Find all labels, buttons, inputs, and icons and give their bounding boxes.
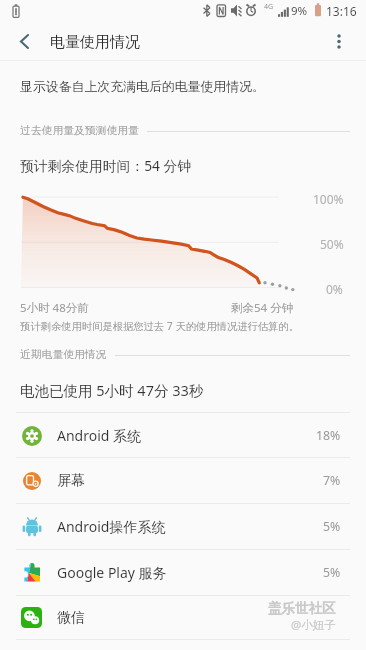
- button[interactable]: Google Play 服务: [0, 550, 366, 595]
- button[interactable]: Android操作系统: [0, 504, 366, 549]
- button[interactable]: Back: [4, 22, 44, 61]
- staticText: 预计剩余使用时间是根据您过去 7 天的使用情况进行估算的。: [20, 319, 299, 333]
- staticText: 18%: [316, 427, 341, 444]
- staticText: 5%: [323, 518, 341, 535]
- staticText: 剩余54 分钟: [231, 300, 294, 316]
- staticText: 过去使用量及预测使用量: [20, 124, 139, 138]
- staticText: 100%: [313, 191, 344, 207]
- button[interactable]: 微信: [0, 596, 366, 639]
- button[interactable]: More options: [322, 22, 356, 61]
- staticText: 5%: [323, 564, 341, 581]
- staticText: 电池已使用 5小时 47分 33秒: [20, 380, 204, 400]
- staticText: @小妞子: [291, 617, 336, 633]
- staticText: 5小时 48分前: [20, 300, 89, 316]
- staticText: Google Play 服务: [57, 563, 167, 582]
- staticText: 13:16: [326, 3, 357, 19]
- staticText: 0%: [326, 281, 343, 297]
- staticText: 电量使用情况: [50, 33, 140, 52]
- staticText: 屏幕: [57, 472, 85, 490]
- staticText: 7%: [323, 472, 341, 489]
- button[interactable]: 屏幕: [0, 458, 366, 503]
- staticText: 预计剩余使用时间：54 分钟: [20, 156, 192, 175]
- staticText: 近期电量使用情况: [20, 348, 107, 362]
- staticText: Android操作系统: [57, 517, 166, 536]
- staticText: 盖乐世社区: [268, 600, 336, 617]
- staticText: 4G: [264, 2, 274, 12]
- staticText: Android 系统: [57, 426, 142, 445]
- button[interactable]: Android 系统: [0, 413, 366, 457]
- staticText: 显示设备自上次充满电后的电量使用情况。: [20, 79, 265, 95]
- staticText: 50%: [320, 236, 344, 252]
- staticText: 9%: [291, 3, 308, 19]
- staticText: 微信: [57, 609, 85, 627]
